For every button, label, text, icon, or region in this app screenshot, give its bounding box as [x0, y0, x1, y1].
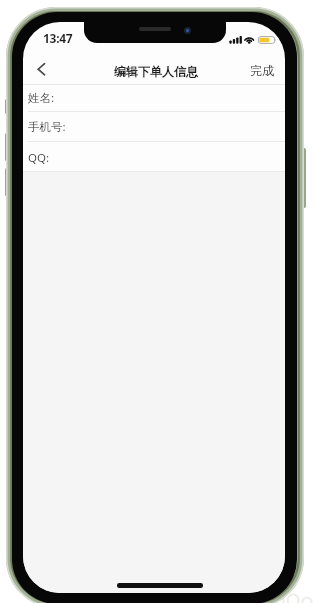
staticText: 姓名: [28, 90, 55, 106]
button[interactable] [31, 58, 51, 82]
staticText: 手机号: [28, 119, 66, 135]
button[interactable]: 手机号: [23, 111, 285, 141]
button[interactable]: QQ: [23, 141, 285, 171]
button[interactable]: 姓名: [23, 84, 285, 111]
staticText: QQ: [28, 150, 50, 166]
staticText: 13:47 [43, 30, 73, 46]
staticText: 编辑下单人信息 [114, 64, 198, 79]
staticText: 完成 [250, 63, 274, 78]
button[interactable]: 完成 [244, 58, 280, 82]
